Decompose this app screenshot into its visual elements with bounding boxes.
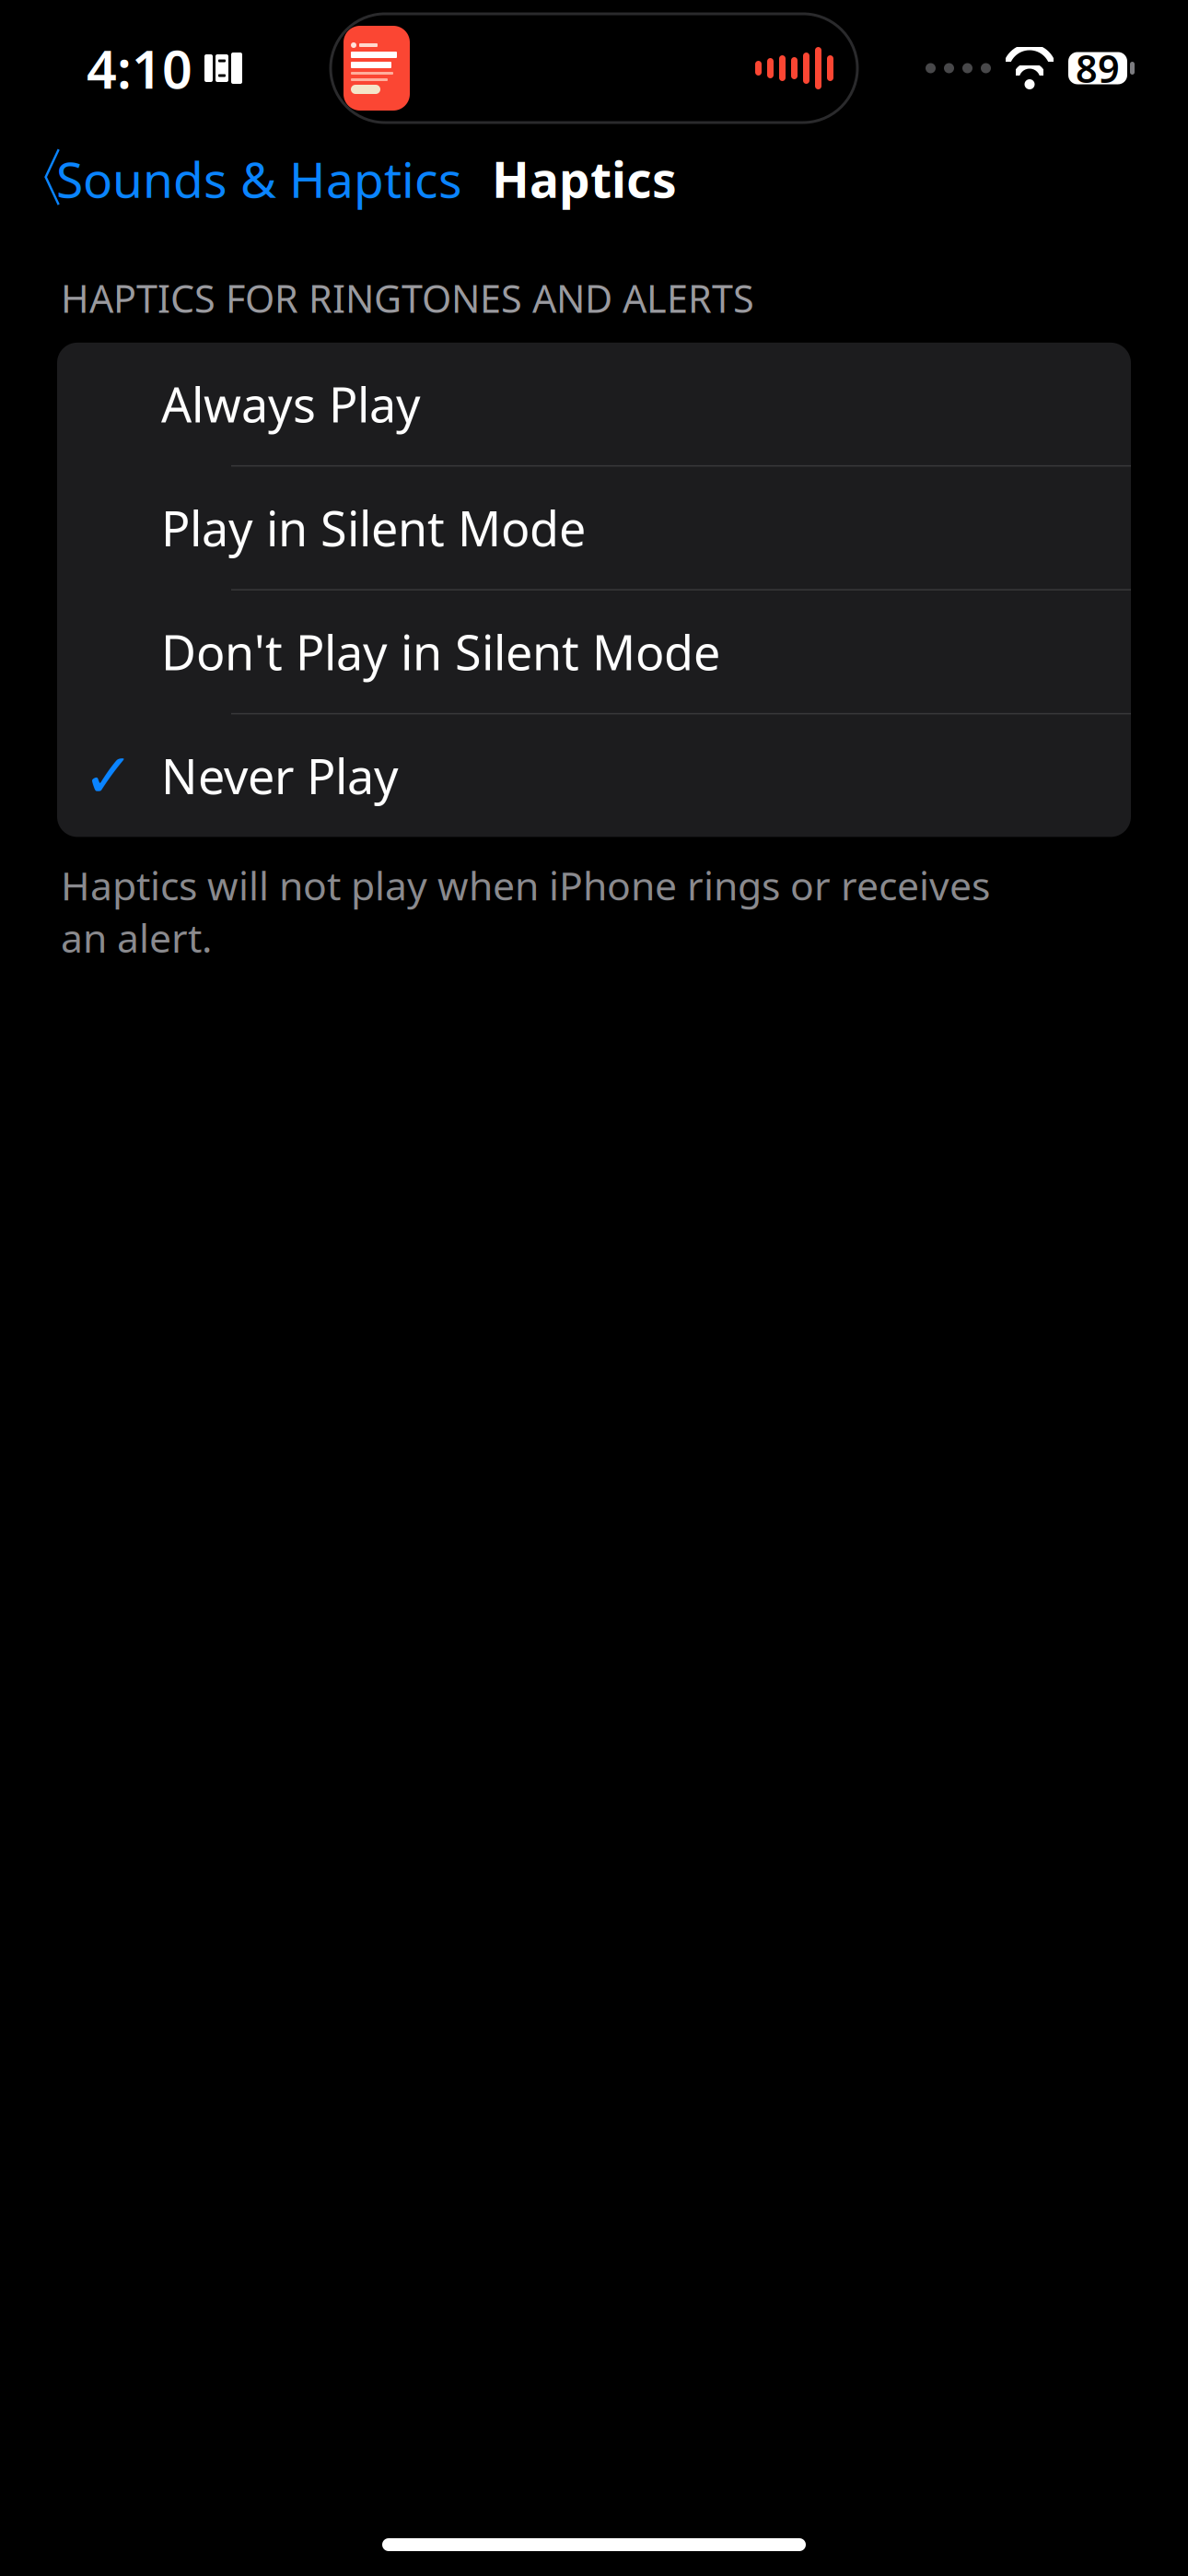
staticText: ✓ (83, 741, 134, 811)
staticText: 89 (1076, 43, 1120, 94)
button[interactable]: Don't Play in Silent Mode (57, 590, 1131, 713)
staticText: Sounds & Haptics (56, 146, 462, 211)
button[interactable]: Play in Silent Mode (57, 467, 1131, 589)
staticText: Haptics will not play when iPhone rings … (61, 859, 990, 963)
staticText: Don't Play in Silent Mode (161, 620, 720, 684)
button[interactable]: ✓ (57, 714, 1131, 837)
staticText: Play in Silent Mode (161, 496, 586, 560)
staticText: Always Play (161, 372, 421, 436)
staticText: Haptics (492, 146, 677, 211)
button[interactable]: 〈 (0, 136, 470, 221)
staticText: HAPTICS FOR RINGTONES AND ALERTS (61, 273, 754, 323)
staticText: 4:10 (87, 33, 192, 103)
staticText: 〈 (4, 139, 68, 218)
button[interactable]: Always Play (57, 343, 1131, 465)
staticText: Never Play (161, 744, 399, 808)
